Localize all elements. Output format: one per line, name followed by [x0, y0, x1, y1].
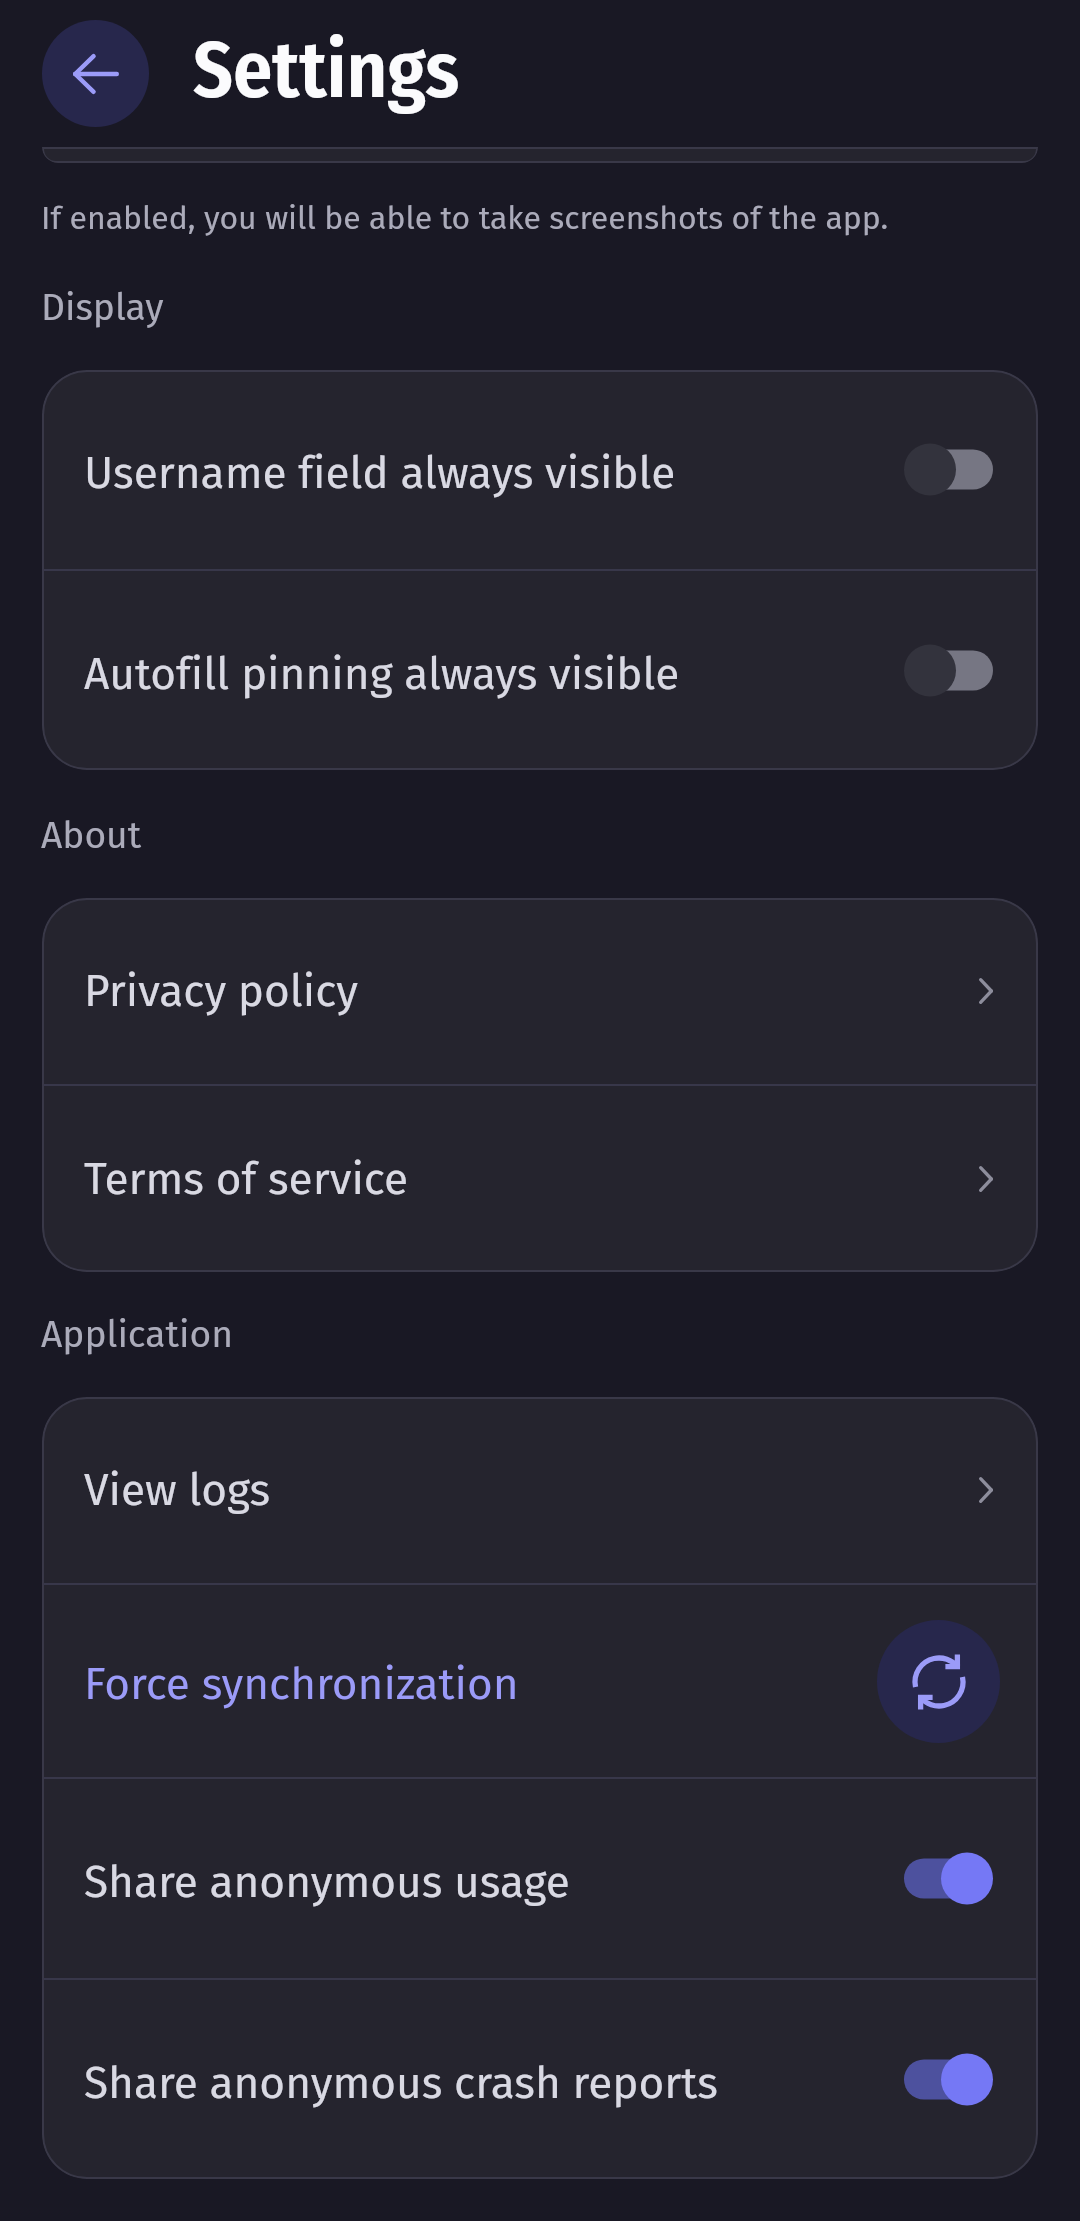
staticText: Username field always visible — [84, 447, 904, 500]
staticText: Display — [41, 285, 164, 330]
button[interactable]: Share anonymous crash reports — [42, 1980, 1038, 2179]
staticText: View logs — [84, 1464, 979, 1517]
staticText: Share anonymous usage — [84, 1856, 904, 1909]
button[interactable]: Share anonymous usage — [42, 1779, 1038, 1978]
staticText: Application — [41, 1312, 233, 1357]
button[interactable]: Force synchronization — [877, 1620, 1000, 1743]
button[interactable]: Terms of service — [42, 1086, 1038, 1272]
staticText: About — [41, 813, 142, 858]
button[interactable]: Autofill pinning always visible — [42, 571, 1038, 770]
staticText: Share anonymous crash reports — [84, 2057, 904, 2110]
staticText: Autofill pinning always visible — [84, 648, 904, 701]
button[interactable]: Force synchronization — [42, 1585, 1038, 1777]
button[interactable]: Username field always visible — [42, 370, 1038, 569]
button[interactable]: View logs — [42, 1397, 1038, 1583]
button[interactable]: Privacy policy — [42, 898, 1038, 1084]
button[interactable]: Back — [42, 20, 149, 127]
staticText: If enabled, you will be able to take scr… — [41, 199, 889, 237]
staticText: Force synchronization — [84, 1658, 877, 1711]
staticText: Settings — [193, 24, 460, 118]
staticText: Privacy policy — [84, 965, 979, 1018]
staticText: Terms of service — [84, 1153, 979, 1206]
